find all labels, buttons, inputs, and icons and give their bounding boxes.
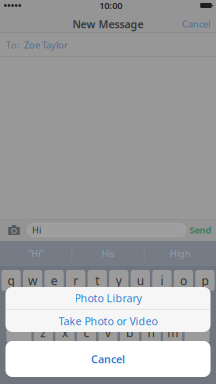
button[interactable]: Send xyxy=(186,219,215,241)
staticText: r xyxy=(73,272,78,288)
staticText: f xyxy=(84,298,88,314)
staticText: Cancel xyxy=(182,18,210,30)
button[interactable]: Take photo xyxy=(1,219,27,241)
staticText: Zoe Taylor xyxy=(24,39,68,51)
staticText: v xyxy=(105,324,111,340)
staticText: t xyxy=(95,272,99,288)
staticText: g xyxy=(104,298,111,314)
button[interactable]: “Hi” xyxy=(0,241,72,266)
staticText: 10:00 xyxy=(99,0,122,12)
staticText: Cancel xyxy=(91,352,125,366)
staticText: w xyxy=(28,272,37,288)
staticText: k xyxy=(170,298,176,314)
staticText: Hi xyxy=(32,224,41,236)
staticText: x xyxy=(62,324,68,340)
button[interactable]: Cancel xyxy=(182,15,216,33)
staticText: “Hi” xyxy=(28,247,43,260)
staticText: l xyxy=(193,298,196,314)
staticText: i xyxy=(160,272,163,288)
staticText: m xyxy=(167,324,178,340)
button[interactable]: Take Photo or Video xyxy=(5,310,210,332)
staticText: c xyxy=(83,324,89,340)
staticText: h xyxy=(126,298,133,314)
staticText: y xyxy=(116,272,122,288)
staticText: Take Photo or Video xyxy=(58,314,157,328)
staticText: u xyxy=(137,272,144,288)
staticText: p xyxy=(201,272,208,288)
button[interactable]: Cancel xyxy=(5,341,210,377)
staticText: New Message xyxy=(72,17,143,31)
staticText: To: xyxy=(6,39,20,51)
staticText: s xyxy=(40,298,46,314)
staticText: Send xyxy=(189,224,211,236)
staticText: High xyxy=(170,247,191,260)
staticText: Photo Library xyxy=(74,291,141,305)
staticText: a xyxy=(18,298,25,314)
staticText: e xyxy=(51,272,58,288)
button[interactable]: Photo Library xyxy=(5,287,210,309)
staticText: His xyxy=(101,247,114,260)
staticText: d xyxy=(61,298,68,314)
staticText: z xyxy=(40,324,46,340)
staticText: n xyxy=(148,324,155,340)
staticText: j xyxy=(150,298,153,314)
button[interactable]: High xyxy=(144,241,216,266)
button[interactable]: His xyxy=(72,241,144,266)
staticText: q xyxy=(7,272,14,288)
staticText: b xyxy=(126,324,133,340)
staticText: o xyxy=(180,272,187,288)
